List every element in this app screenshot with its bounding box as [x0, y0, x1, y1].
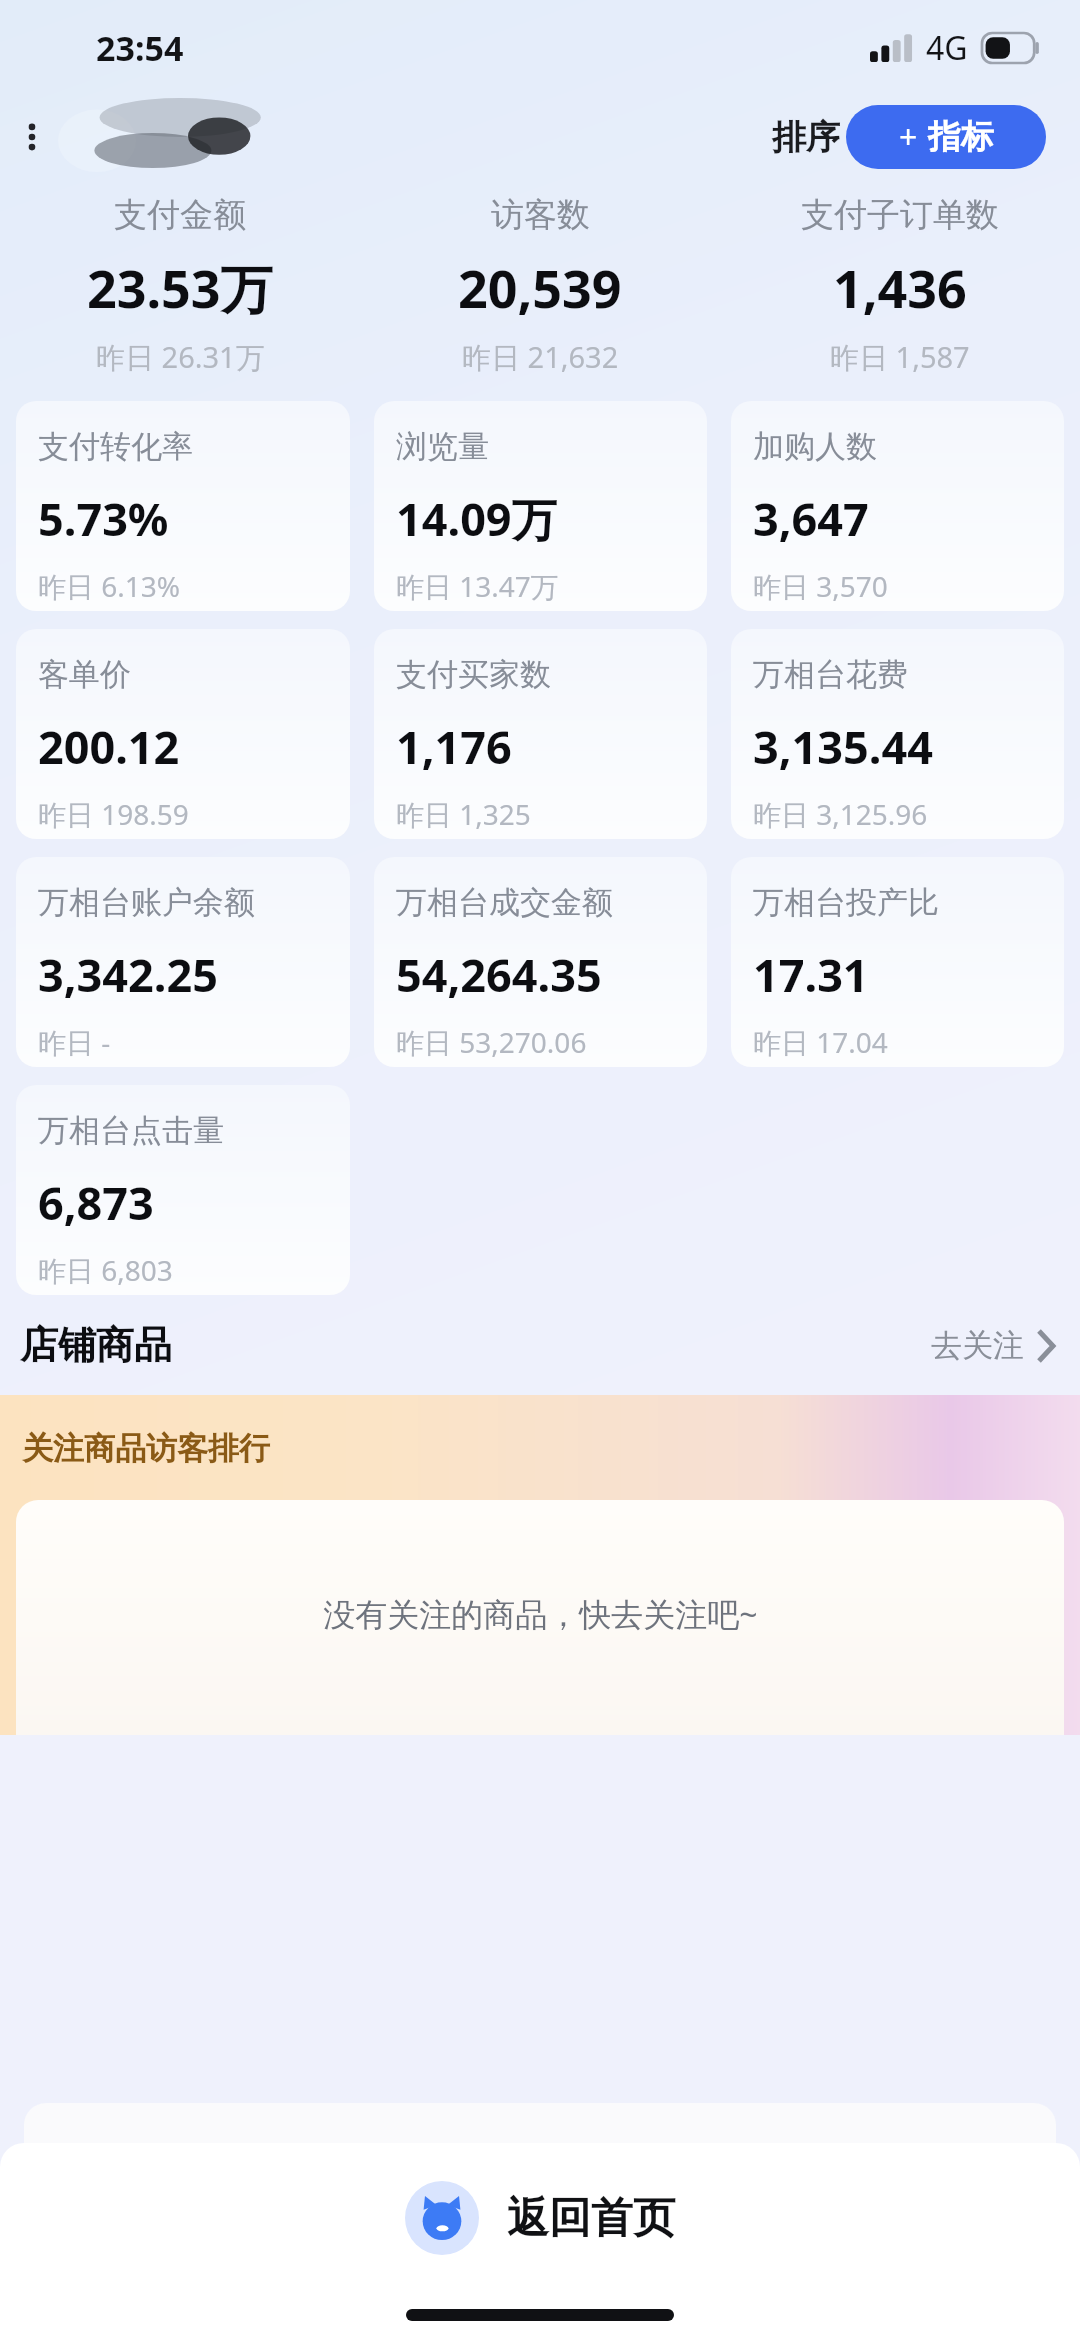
staticText: 昨日 198.59: [38, 795, 189, 833]
button[interactable]: 访客数: [360, 194, 720, 377]
staticText: 昨日 13.47万: [396, 567, 559, 605]
staticText: 5.73%: [38, 488, 169, 549]
staticText: 昨日 3,125.96: [753, 795, 928, 833]
staticText: 浏览量: [396, 427, 489, 466]
staticText: 昨日 3,570: [753, 567, 888, 605]
staticText: 万相台点击量: [38, 1111, 224, 1150]
staticText: 昨日 21,632: [462, 337, 619, 377]
staticText: 万相台投产比: [753, 883, 939, 922]
button[interactable]: 万相台投产比: [731, 857, 1064, 1067]
button[interactable]: 去关注: [931, 1326, 1056, 1365]
staticText: 去关注: [931, 1326, 1024, 1365]
button[interactable]: 支付子订单数: [720, 194, 1080, 377]
staticText: 昨日 26.31万: [96, 337, 265, 377]
staticText: 20,539: [458, 252, 622, 323]
button[interactable]: 排序: [772, 116, 840, 159]
button[interactable]: 返回首页: [405, 2181, 675, 2255]
button[interactable]: 加购人数: [731, 401, 1064, 611]
staticText: 昨日 1,587: [830, 337, 970, 377]
staticText: 昨日 6.13%: [38, 567, 181, 605]
button[interactable]: 浏览量: [374, 401, 707, 611]
staticText: 没有关注的商品，快去关注吧~: [323, 1592, 758, 1636]
button[interactable]: 支付买家数: [374, 629, 707, 839]
button[interactable]: 万相台成交金额: [374, 857, 707, 1067]
staticText: 14.09万: [396, 488, 557, 549]
staticText: 3,647: [753, 488, 869, 549]
staticText: 3,135.44: [753, 716, 933, 777]
staticText: 访客数: [491, 194, 590, 236]
staticText: 昨日 1,325: [396, 795, 531, 833]
staticText: 54,264.35: [396, 944, 602, 1005]
staticText: +: [899, 115, 918, 159]
staticText: 支付金额: [114, 194, 246, 236]
staticText: 昨日 -: [38, 1023, 111, 1061]
button[interactable]: 支付转化率: [16, 401, 350, 611]
staticText: 1,436: [833, 252, 967, 323]
staticText: 昨日 53,270.06: [396, 1023, 587, 1061]
staticText: 指标: [928, 116, 994, 158]
staticText: 店铺商品: [20, 1321, 172, 1369]
staticText: 支付买家数: [396, 655, 551, 694]
staticText: 客单价: [38, 655, 131, 694]
button[interactable]: 支付金额: [0, 194, 360, 377]
staticText: 支付转化率: [38, 427, 193, 466]
staticText: 1,176: [396, 716, 512, 777]
staticText: 昨日 6,803: [38, 1251, 173, 1289]
staticText: 万相台花费: [753, 655, 908, 694]
button[interactable]: +: [846, 105, 1046, 169]
staticText: 万相台账户余额: [38, 883, 255, 922]
staticText: 加购人数: [753, 427, 877, 466]
staticText: 万相台成交金额: [396, 883, 613, 922]
button[interactable]: More: [10, 115, 54, 159]
staticText: 200.12: [38, 716, 180, 777]
button[interactable]: 万相台点击量: [16, 1085, 350, 1295]
staticText: 关注商品访客排行: [22, 1429, 270, 1468]
staticText: 6,873: [38, 1172, 154, 1233]
staticText: 23:54: [96, 25, 184, 71]
staticText: 4G: [926, 26, 968, 70]
button[interactable]: 万相台花费: [731, 629, 1064, 839]
staticText: 昨日 17.04: [753, 1023, 888, 1061]
staticText: 3,342.25: [38, 944, 218, 1005]
staticText: 支付子订单数: [801, 194, 999, 236]
staticText: 返回首页: [507, 2192, 675, 2245]
staticText: 17.31: [753, 944, 869, 1005]
button[interactable]: 客单价: [16, 629, 350, 839]
button[interactable]: 万相台账户余额: [16, 857, 350, 1067]
staticText: 23.53万: [87, 252, 273, 323]
